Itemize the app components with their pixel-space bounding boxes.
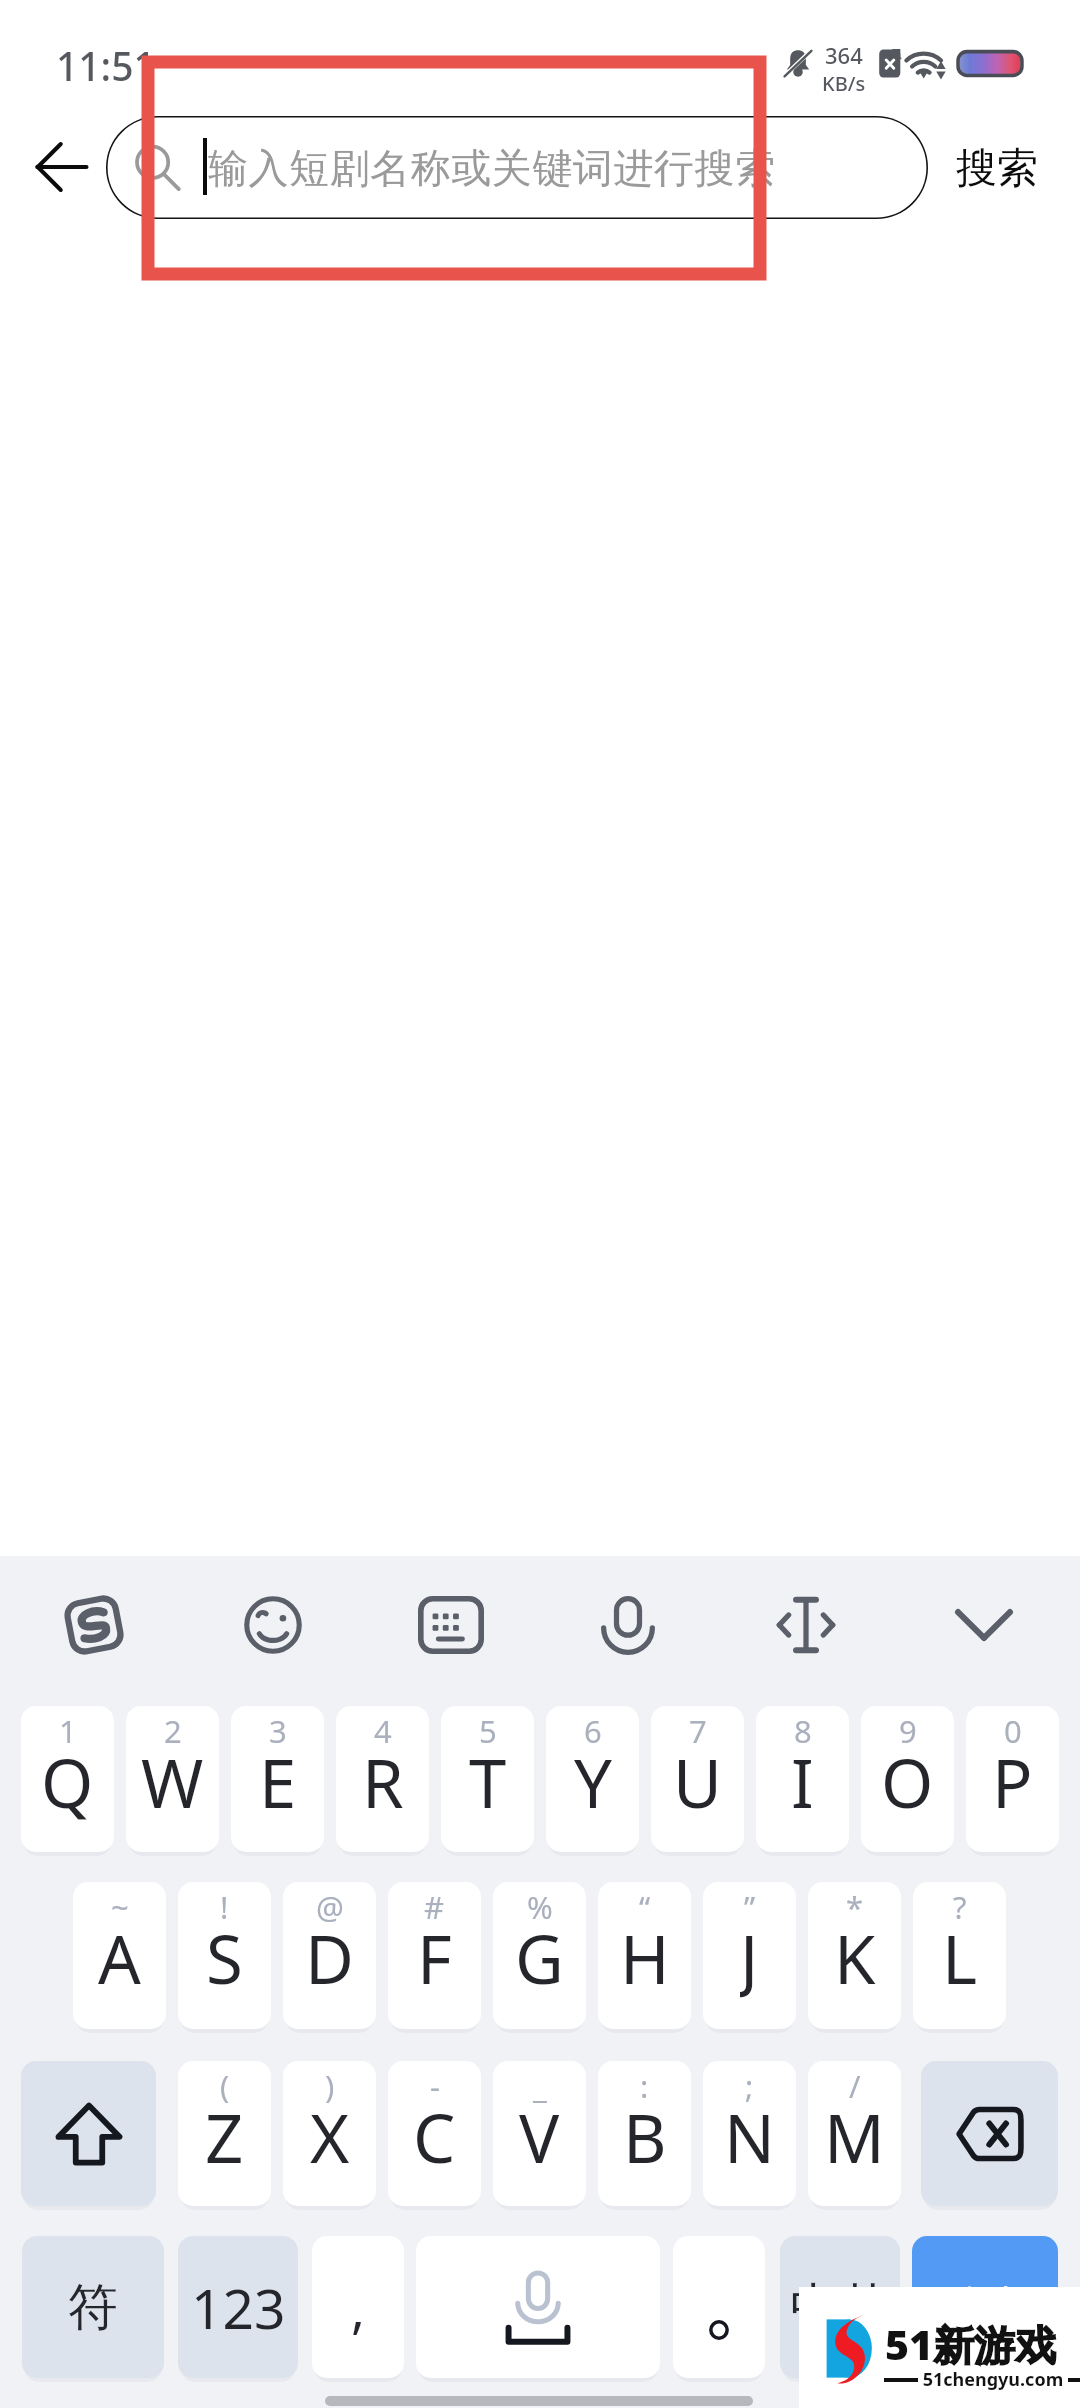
staticText: I	[791, 1736, 814, 1826]
button[interactable]: space	[416, 2236, 660, 2378]
staticText: B	[623, 2091, 667, 2181]
staticText: O	[881, 1736, 934, 1826]
staticText: -	[430, 2065, 440, 2107]
staticText: 4	[374, 1710, 392, 1752]
button[interactable]: del	[921, 2061, 1058, 2206]
staticText: N	[724, 2091, 775, 2181]
button[interactable]: :	[598, 2061, 691, 2206]
button[interactable]: 4	[336, 1706, 429, 1852]
staticText: A	[98, 1912, 141, 2002]
staticText: !	[220, 1886, 229, 1928]
staticText: U	[673, 1736, 722, 1826]
button[interactable]: ,	[312, 2236, 404, 2378]
staticText: “	[639, 1886, 651, 1928]
staticText: 11:51	[56, 39, 156, 92]
button[interactable]: period	[673, 2236, 765, 2378]
button[interactable]: _	[493, 2061, 586, 2206]
staticText: Z	[205, 2091, 244, 2181]
staticText: #	[424, 1886, 445, 1928]
button[interactable]: 搜索	[946, 130, 1048, 208]
button[interactable]: 9	[861, 1706, 954, 1852]
staticText: V	[519, 2091, 560, 2181]
staticText: ,	[351, 2272, 365, 2343]
staticText: C	[413, 2091, 456, 2181]
staticText: ~	[111, 1886, 129, 1928]
staticText: H	[620, 1912, 670, 2002]
staticText: 123	[191, 2270, 286, 2345]
staticText: 中英	[790, 2276, 890, 2339]
button[interactable]: 输入短剧名称或关键词进行搜索	[106, 116, 928, 219]
staticText: (	[220, 2065, 230, 2107]
staticText: 364	[825, 40, 863, 70]
button[interactable]: Emoji	[227, 1579, 319, 1671]
button[interactable]: ”	[703, 1882, 796, 2029]
staticText: Q	[41, 1736, 94, 1826]
button[interactable]: 8	[756, 1706, 849, 1852]
button[interactable]: 6	[546, 1706, 639, 1852]
staticText: R	[362, 1736, 404, 1826]
staticText: L	[942, 1912, 978, 2002]
button[interactable]: 5	[441, 1706, 534, 1852]
button[interactable]: 中英	[780, 2236, 900, 2378]
staticText: 1	[59, 1710, 77, 1752]
button[interactable]: shift	[21, 2061, 156, 2206]
button[interactable]: Sogou input method	[48, 1579, 140, 1671]
staticText: @	[316, 1886, 344, 1928]
button[interactable]: 3	[231, 1706, 324, 1852]
staticText: Y	[574, 1736, 612, 1826]
staticText: _	[533, 2065, 547, 2107]
staticText: )	[325, 2065, 335, 2107]
button[interactable]: Keyboard layout	[405, 1579, 497, 1671]
button[interactable]: @	[283, 1882, 376, 2029]
staticText: 2	[164, 1710, 182, 1752]
button[interactable]: 7	[651, 1706, 744, 1852]
staticText: S	[206, 1912, 243, 2002]
staticText: T	[469, 1736, 507, 1826]
button[interactable]: -	[388, 2061, 481, 2206]
staticText: KB/s	[822, 70, 866, 97]
staticText: :	[640, 2065, 649, 2107]
button[interactable]: ~	[73, 1882, 166, 2029]
staticText: %	[527, 1886, 553, 1928]
staticText: D	[305, 1912, 354, 2002]
button[interactable]: Back	[22, 126, 104, 208]
staticText: 输入短剧名称或关键词进行搜索	[208, 143, 776, 193]
button[interactable]: /	[808, 2061, 901, 2206]
button[interactable]: 1	[21, 1706, 114, 1852]
button[interactable]: !	[178, 1882, 271, 2029]
button[interactable]: 2	[126, 1706, 219, 1852]
button[interactable]: Hide keyboard	[938, 1579, 1030, 1671]
staticText: W	[141, 1736, 204, 1826]
staticText: *	[846, 1886, 864, 1928]
staticText: 5	[479, 1710, 497, 1752]
staticText: 6	[584, 1710, 602, 1752]
staticText: 符	[68, 2276, 118, 2339]
staticText: 搜索	[943, 2281, 1027, 2334]
staticText: K	[834, 1912, 876, 2002]
button[interactable]: Voice input	[582, 1579, 674, 1671]
button[interactable]: 搜索	[912, 2236, 1058, 2378]
button[interactable]: #	[388, 1882, 481, 2029]
button[interactable]: *	[808, 1882, 901, 2029]
staticText: 51新游戏	[885, 2316, 1057, 2372]
button[interactable]: “	[598, 1882, 691, 2029]
button[interactable]: )	[283, 2061, 376, 2206]
button[interactable]: %	[493, 1882, 586, 2029]
button[interactable]: ?	[913, 1882, 1006, 2029]
button[interactable]: 符	[22, 2236, 164, 2378]
button[interactable]: ;	[703, 2061, 796, 2206]
button[interactable]: (	[178, 2061, 271, 2206]
staticText: ;	[745, 2065, 754, 2107]
staticText: 0	[1004, 1710, 1022, 1752]
staticText: 7	[689, 1710, 707, 1752]
button[interactable]: 123	[178, 2236, 298, 2378]
staticText: ”	[744, 1886, 756, 1928]
staticText: 9	[899, 1710, 917, 1752]
staticText: P	[992, 1736, 1033, 1826]
staticText: 8	[794, 1710, 812, 1752]
button[interactable]: Move cursor	[760, 1579, 852, 1671]
button[interactable]: 0	[966, 1706, 1059, 1852]
staticText: X	[310, 2091, 350, 2181]
staticText: M	[824, 2091, 885, 2181]
staticText: 搜索	[956, 143, 1038, 195]
